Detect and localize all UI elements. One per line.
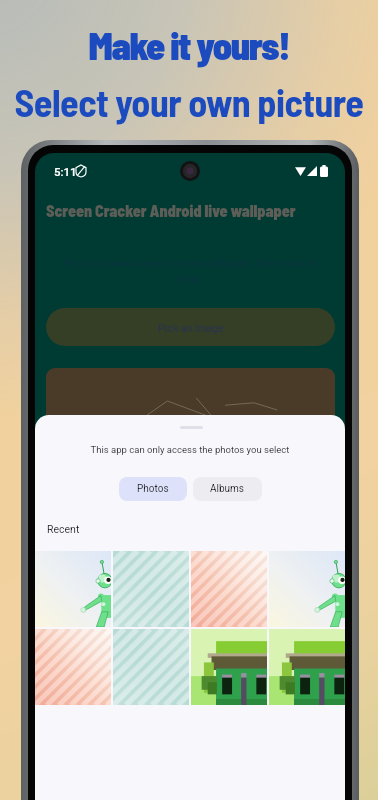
- button[interactable]: Close: [43, 630, 67, 654]
- button[interactable]: Photo: [113, 629, 189, 705]
- staticText: Recent: [47, 523, 80, 535]
- staticText: Select your own picture: [0, 79, 378, 125]
- staticText: Pick an image: [158, 320, 224, 334]
- staticText: Albums: [210, 483, 245, 495]
- button[interactable]: Photo: [191, 551, 267, 627]
- button[interactable]: Photo: [113, 551, 189, 627]
- staticText: Make it yours!: [0, 22, 378, 68]
- staticText: Screen Cracker Android live wallpaper: [46, 201, 296, 220]
- button[interactable]: Photo: [269, 629, 345, 705]
- button[interactable]: Photo: [35, 551, 111, 627]
- staticText: 5:11: [54, 165, 77, 178]
- button[interactable]: Photo: [35, 629, 111, 705]
- button[interactable]: Photo: [191, 629, 267, 705]
- button[interactable]: Photo: [269, 551, 345, 627]
- staticText: Photos: [137, 483, 169, 495]
- staticText: This app can only access the photos you …: [35, 444, 345, 455]
- button[interactable]: Albums: [193, 477, 262, 501]
- button[interactable]: More options: [316, 630, 340, 654]
- button[interactable]: Photos: [119, 477, 187, 501]
- button[interactable]: Pick an image: [46, 308, 335, 346]
